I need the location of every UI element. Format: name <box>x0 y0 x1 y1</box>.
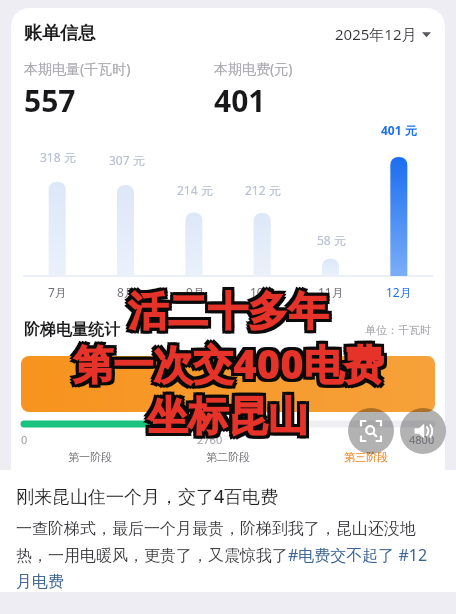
button[interactable]: Sound <box>400 408 446 454</box>
staticText: 坐标昆山 <box>151 391 311 441</box>
staticText: 活二十多年 <box>131 289 331 339</box>
staticText: 账单信息 <box>24 22 96 45</box>
staticText: 坐标昆山 <box>148 388 308 438</box>
staticText: 0 <box>21 432 28 447</box>
staticText: 318 元 <box>40 149 76 165</box>
staticText: 第一次交400电费 <box>76 333 387 388</box>
staticText: 阶梯电量统计 <box>24 320 120 340</box>
staticText: 第一次交400电费 <box>70 336 381 391</box>
staticText: 第三阶段 <box>344 450 388 464</box>
staticText: 活二十多年 <box>131 286 331 336</box>
staticText: 第一次交400电费 <box>73 333 384 388</box>
staticText: 12月 <box>386 284 412 300</box>
staticText: 第一次交400电费 <box>70 333 381 388</box>
button[interactable] <box>21 356 435 412</box>
staticText: 活二十多年 <box>128 286 328 336</box>
staticText: 活二十多年 <box>128 289 328 339</box>
staticText: 一查阶梯式，最后一个月最贵，阶梯到我了，昆山还没地热，一用电暖风，更贵了，又震惊… <box>16 519 442 592</box>
staticText: 本期电量(千瓦时) <box>24 59 131 78</box>
staticText: 7月 <box>48 284 67 300</box>
staticText: 401 <box>214 80 266 121</box>
staticText: 活二十多年 <box>125 286 325 336</box>
staticText: 坐标昆山 <box>148 394 308 444</box>
staticText: 坐标昆山 <box>145 391 305 441</box>
staticText: 坐标昆山 <box>148 391 308 441</box>
staticText: 4800 <box>409 432 435 447</box>
staticText: 活二十多年 <box>131 283 331 333</box>
staticText: 第一次交400电费 <box>70 339 381 394</box>
staticText: 坐标昆山 <box>151 388 311 438</box>
staticText: 2025年12月 <box>335 24 417 44</box>
staticText: 第一次交400电费 <box>73 339 384 394</box>
staticText: 活二十多年 <box>125 289 325 339</box>
staticText: 第一次交400电费 <box>76 336 387 391</box>
staticText: 9月 <box>186 284 205 300</box>
staticText: 2760 <box>197 432 223 447</box>
staticText: 212 元 <box>245 182 281 198</box>
staticText: 坐标昆山 <box>145 394 305 444</box>
staticText: 单位：千瓦时 <box>365 323 431 337</box>
staticText: 58 元 <box>317 232 346 248</box>
staticText: 307 元 <box>109 152 145 168</box>
staticText: 活二十多年 <box>128 283 328 333</box>
staticText: 刚来昆山住一个月，交了4百电费 <box>16 484 279 509</box>
staticText: 第一次交400电费 <box>76 339 387 394</box>
staticText: 坐标昆山 <box>151 394 311 444</box>
staticText: 8月 <box>117 284 136 300</box>
staticText: 坐标昆山 <box>145 388 305 438</box>
staticText: 401 元 <box>381 122 417 138</box>
staticText: 11月 <box>318 284 344 300</box>
button[interactable]: Scan <box>348 408 394 454</box>
button[interactable]: 2025年12月 <box>335 24 431 44</box>
staticText: 本期电费(元) <box>214 59 293 78</box>
staticText: 第一阶段 <box>68 450 112 464</box>
staticText: 第二阶段 <box>206 450 250 464</box>
staticText: 10月 <box>250 284 276 300</box>
staticText: 第一次交400电费 <box>73 336 384 391</box>
staticText: 557 <box>24 80 76 121</box>
staticText: 214 元 <box>177 182 213 198</box>
staticText: 活二十多年 <box>125 283 325 333</box>
